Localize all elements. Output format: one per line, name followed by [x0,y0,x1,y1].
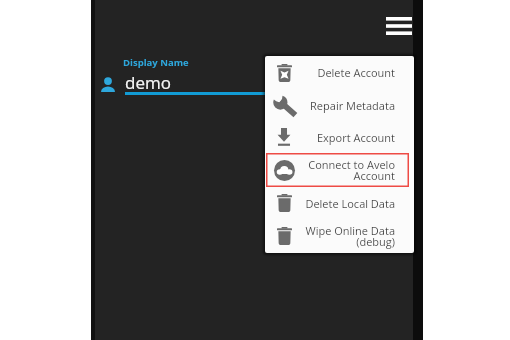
staticText: Display Name [123,56,189,69]
staticText: Repair Metadata [310,98,395,113]
button[interactable]: Repair Metadata [265,89,414,121]
button[interactable]: Open menu [381,9,417,43]
button[interactable]: Export Account [265,121,414,153]
staticText: demo [125,71,171,94]
button[interactable]: Wipe Online Data (debug) [265,219,414,253]
staticText: Export Account [316,130,395,145]
staticText: Delete Local Data [305,196,395,211]
staticText: Delete Account [317,65,395,80]
button[interactable]: Delete Local Data [265,187,414,219]
staticText: Connect to Avelo Account [308,157,395,184]
button[interactable]: Delete Account [265,56,414,89]
staticText: Wipe Online Data (debug) [305,223,395,250]
button[interactable]: Connect to Avelo Account [265,153,414,187]
